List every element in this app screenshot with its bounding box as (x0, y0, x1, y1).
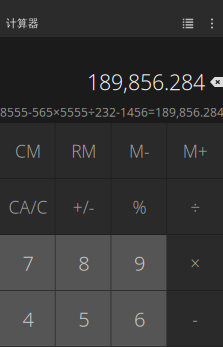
button[interactable]: 8 (56, 235, 112, 291)
button[interactable]: 9 (111, 235, 167, 291)
staticText: × (190, 251, 200, 274)
staticText: RM (71, 139, 96, 162)
staticText: +/- (73, 195, 95, 218)
button[interactable]: M+ (167, 123, 223, 179)
button[interactable]: % (111, 179, 167, 235)
button[interactable]: History (175, 10, 201, 37)
staticText: M+ (183, 139, 208, 162)
button[interactable]: 7 (0, 235, 56, 291)
staticText: - (192, 307, 198, 330)
button[interactable]: M- (111, 123, 167, 179)
button[interactable]: RM (56, 123, 112, 179)
button[interactable]: +/- (56, 179, 112, 235)
staticText: 6 (134, 306, 145, 332)
staticText: 8 (78, 250, 89, 276)
staticText: 计算器 (6, 17, 39, 30)
staticText: 7 (22, 250, 33, 276)
button[interactable]: × (167, 235, 223, 291)
staticText: 4 (22, 306, 33, 332)
staticText: % (132, 195, 146, 218)
staticText: CA/C (8, 195, 47, 218)
button[interactable]: 4 (0, 291, 56, 347)
button[interactable]: CA/C (0, 179, 56, 235)
staticText: 8555-565×5555÷232-1456=189,856.284 (0, 104, 223, 120)
button[interactable]: CM (0, 123, 56, 179)
staticText: 189,856.284 (87, 68, 205, 96)
button[interactable]: 5 (56, 291, 112, 347)
staticText: 5 (78, 306, 89, 332)
button[interactable]: 6 (111, 291, 167, 347)
button[interactable]: ÷ (167, 179, 223, 235)
staticText: 9 (134, 250, 145, 276)
button[interactable]: - (167, 291, 223, 347)
staticText: ÷ (190, 195, 200, 218)
button[interactable]: More options (201, 10, 223, 37)
staticText: M- (129, 139, 150, 162)
staticText: CM (15, 139, 41, 162)
